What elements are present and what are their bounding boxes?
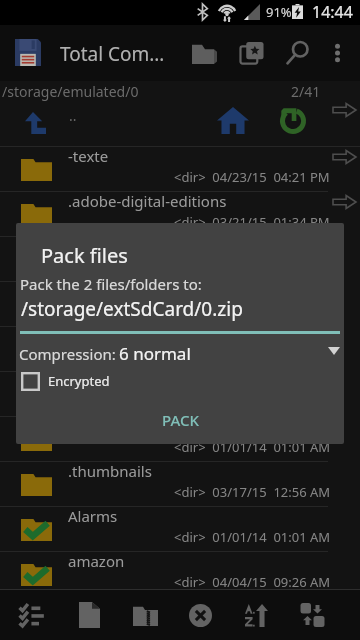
staticText: 91% bbox=[266, 3, 292, 21]
button[interactable]: Folders bbox=[182, 25, 226, 81]
staticText: <dir> 03/01/15 11:11 AM bbox=[174, 348, 331, 366]
staticText: <dir> 02/11/15 09:22 PM bbox=[174, 303, 330, 321]
staticText: Pack the 2 files/folders to: bbox=[20, 274, 202, 294]
staticText: .. bbox=[69, 106, 77, 125]
button[interactable]: New file bbox=[64, 590, 114, 640]
staticText: .bookmarks bbox=[68, 281, 152, 301]
staticText: <dir> 01/01/14 01:01 AM bbox=[174, 438, 331, 456]
staticText: Encrypted bbox=[48, 372, 110, 390]
staticText: .android_secure bbox=[68, 236, 181, 256]
button[interactable]: Alarms bbox=[0, 507, 360, 551]
staticText: <dir> 03/17/15 12:56 AM bbox=[174, 483, 331, 501]
button[interactable]: Pack files bbox=[119, 590, 171, 640]
button[interactable]: Compression: bbox=[16, 340, 344, 366]
staticText: PACK bbox=[162, 410, 199, 430]
button[interactable]: Search bbox=[276, 25, 320, 81]
staticText: <dir> 03/21/15 01:34 PM bbox=[174, 213, 330, 231]
button[interactable]: PACK bbox=[146, 403, 214, 437]
staticText: .face bbox=[68, 371, 102, 391]
button[interactable]: Exchange panels bbox=[287, 590, 337, 640]
button[interactable]: Encrypted bbox=[16, 368, 344, 394]
staticText: .thumbnails bbox=[68, 461, 152, 481]
staticText: Total Com… bbox=[60, 41, 165, 67]
button[interactable]: .mmsyscache bbox=[0, 417, 360, 461]
staticText: <dir> 01/01/14 01:01 AM bbox=[174, 528, 331, 546]
button[interactable]: Select files bbox=[6, 590, 58, 640]
button[interactable]: -texte bbox=[0, 147, 360, 191]
button[interactable]: Cancel selection bbox=[175, 590, 225, 640]
staticText: amazon bbox=[68, 551, 125, 571]
staticText: 14:44 bbox=[312, 1, 353, 23]
staticText: .estrongs bbox=[68, 326, 134, 346]
staticText: /storage/extSdCard/0.zip bbox=[21, 296, 243, 322]
staticText: <dir> 04/23/15 04:21 PM bbox=[174, 168, 330, 186]
staticText: 2/41 bbox=[291, 82, 321, 101]
button[interactable]: .estrongs bbox=[0, 327, 360, 371]
staticText: <dir> 04/04/15 09:26 AM bbox=[174, 573, 331, 591]
button[interactable]: .face bbox=[0, 372, 360, 416]
button[interactable]: amazon bbox=[0, 552, 360, 596]
button[interactable]: Sort bbox=[231, 590, 281, 640]
staticText: 6 normal bbox=[119, 342, 191, 365]
button[interactable]: More options bbox=[322, 25, 352, 81]
staticText: Compression: bbox=[19, 344, 116, 364]
button[interactable]: .bookmarks bbox=[0, 282, 360, 326]
button[interactable]: Bookmarks bbox=[230, 25, 274, 81]
staticText: Alarms bbox=[68, 506, 118, 526]
button[interactable]: .thumbnails bbox=[0, 462, 360, 506]
button[interactable]: .adobe-digital-editions bbox=[0, 192, 360, 236]
staticText: Pack files bbox=[41, 242, 128, 269]
button[interactable]: .android_secure bbox=[0, 237, 360, 281]
button[interactable]: .. bbox=[0, 103, 360, 146]
staticText: /storage/emulated/0 bbox=[2, 82, 139, 101]
staticText: -texte bbox=[68, 146, 109, 166]
staticText: .adobe-digital-editions bbox=[68, 191, 227, 211]
